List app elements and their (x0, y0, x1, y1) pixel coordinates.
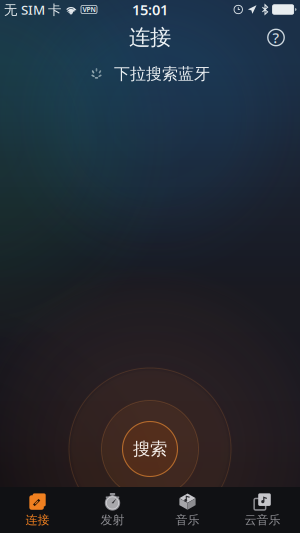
button[interactable]: 云音乐 (225, 487, 300, 533)
button[interactable]: 搜索 (115, 414, 185, 484)
button[interactable]: 连接 (0, 487, 75, 533)
staticText: 15:01 (132, 0, 168, 19)
button[interactable]: Help (260, 21, 292, 53)
staticText: 搜索 (133, 438, 167, 460)
staticText: ? (272, 28, 279, 47)
staticText: 发射 (100, 513, 124, 527)
staticText: 音乐 (175, 513, 199, 527)
staticText: VPN (82, 5, 95, 14)
button[interactable]: 发射 (75, 487, 150, 533)
staticText: 下拉搜索蓝牙 (114, 64, 210, 84)
staticText: 无 SIM 卡 (4, 1, 61, 18)
staticText: 连接 (25, 513, 49, 527)
staticText: 云音乐 (244, 513, 280, 527)
button[interactable]: 音乐 (150, 487, 225, 533)
staticText: 连接 (129, 24, 171, 51)
